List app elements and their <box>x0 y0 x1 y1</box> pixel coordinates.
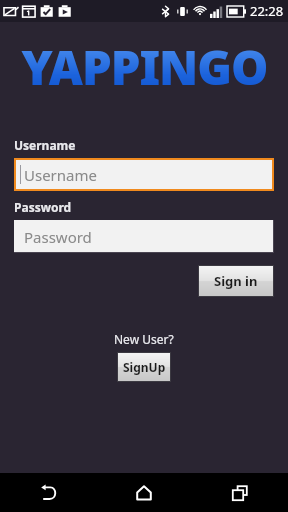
button[interactable]: Back <box>0 473 96 512</box>
staticText: New User? <box>114 331 174 347</box>
staticText: Username <box>24 165 97 185</box>
staticText: Username <box>14 137 76 153</box>
button[interactable]: Username <box>14 158 274 191</box>
staticText: YAPPINGO <box>21 36 268 91</box>
button[interactable]: Recent apps <box>192 473 288 512</box>
button[interactable]: Password <box>14 220 274 253</box>
staticText: 22:28 <box>250 2 284 20</box>
staticText: Password <box>14 199 72 215</box>
button[interactable]: Home <box>96 473 192 512</box>
staticText: Sign in <box>214 272 258 290</box>
staticText: SignUp <box>123 359 166 375</box>
button[interactable]: SignUp <box>118 353 170 381</box>
button[interactable]: Sign in <box>199 266 273 296</box>
staticText: Password <box>24 227 92 247</box>
